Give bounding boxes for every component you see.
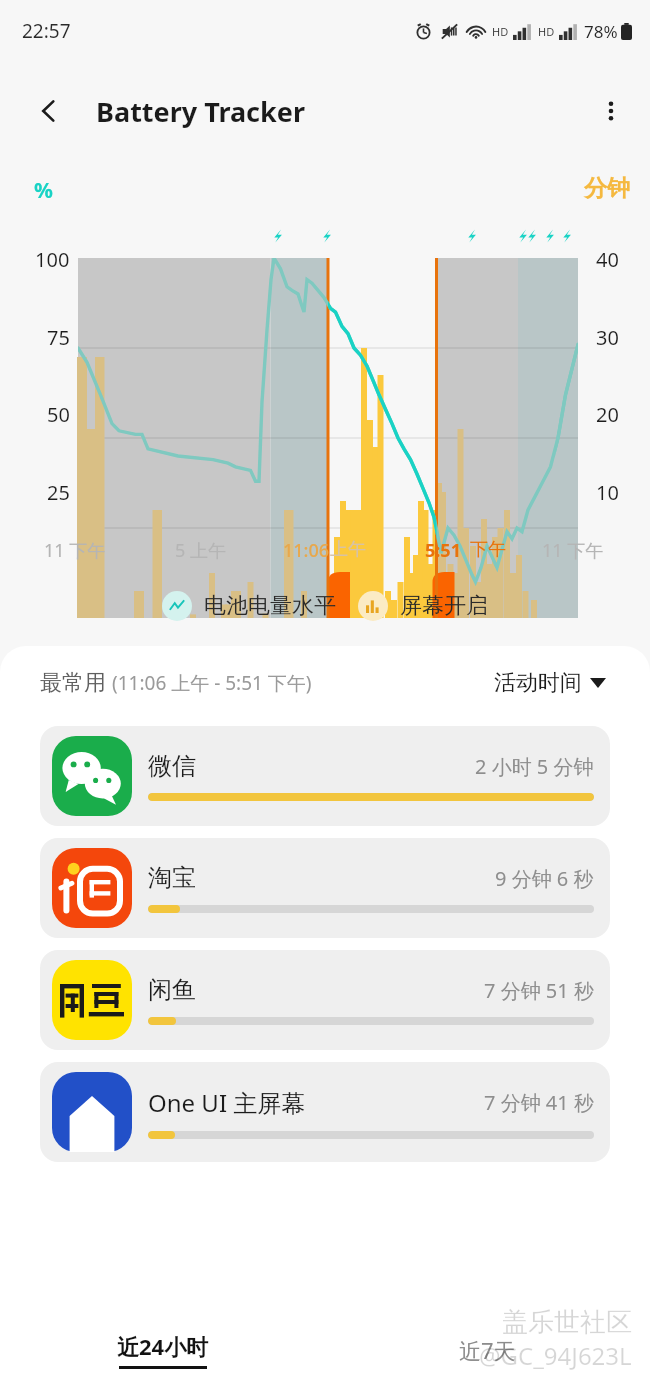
- staticText: 活动时间: [494, 669, 582, 697]
- staticText: 微信: [148, 751, 475, 781]
- button[interactable]: 近7天: [325, 1306, 650, 1394]
- staticText: 2 小时 5 分钟: [475, 753, 594, 780]
- staticText: 5:51: [425, 538, 461, 563]
- staticText: %: [34, 176, 53, 205]
- button[interactable]: One UI 主屏幕: [40, 1062, 610, 1162]
- staticText: Battery Tracker: [96, 93, 305, 130]
- staticText: (11:06 上午 - 5:51 下午): [112, 670, 312, 696]
- staticText: 78%: [584, 20, 618, 43]
- staticText: 40: [596, 246, 619, 273]
- staticText: 75: [47, 324, 70, 351]
- button[interactable]: 微信: [40, 726, 610, 826]
- button[interactable]: More options: [588, 88, 634, 134]
- button[interactable]: 淘宝: [40, 838, 610, 938]
- staticText: 25: [47, 479, 70, 506]
- staticText: 下午: [470, 538, 506, 561]
- staticText: 11:06: [283, 538, 330, 563]
- staticText: 电池电量水平: [204, 592, 336, 620]
- staticText: 30: [596, 324, 619, 351]
- staticText: 7 分钟 41 秒: [484, 1089, 594, 1116]
- staticText: 100: [35, 246, 70, 273]
- staticText: 11 下午: [542, 538, 604, 563]
- staticText: @GC_94J623L: [479, 1339, 632, 1372]
- staticText: 分钟: [584, 174, 630, 203]
- staticText: 11 下午: [44, 538, 106, 563]
- staticText: 10: [596, 479, 619, 506]
- staticText: 最常用: [40, 669, 106, 697]
- staticText: HD: [538, 24, 555, 39]
- staticText: 屏幕开启: [400, 592, 488, 620]
- staticText: 淘宝: [148, 863, 495, 893]
- staticText: 5 上午: [175, 538, 226, 563]
- staticText: 9 分钟 6 秒: [495, 865, 594, 892]
- staticText: One UI 主屏幕: [148, 1086, 484, 1119]
- staticText: 上午: [330, 538, 366, 561]
- staticText: 近7天: [459, 1335, 516, 1365]
- button[interactable]: 闲鱼: [40, 950, 610, 1050]
- staticText: 7 分钟 51 秒: [484, 977, 594, 1004]
- staticText: 近24小时: [117, 1331, 209, 1361]
- staticText: 22:57: [22, 18, 71, 44]
- button[interactable]: 活动时间: [490, 665, 610, 701]
- button[interactable]: 近24小时: [0, 1306, 325, 1394]
- staticText: 闲鱼: [148, 975, 484, 1005]
- staticText: 20: [596, 401, 619, 428]
- staticText: 50: [47, 401, 70, 428]
- staticText: 盖乐世社区: [502, 1306, 632, 1339]
- staticText: HD: [492, 24, 509, 39]
- button[interactable]: Back: [26, 88, 72, 134]
